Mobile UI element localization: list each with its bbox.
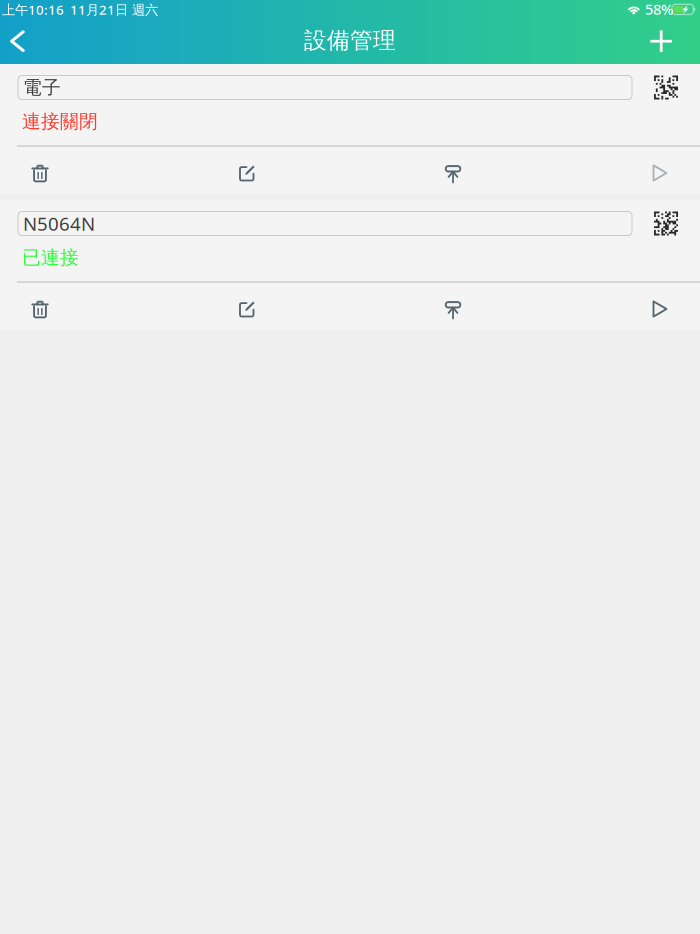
button[interactable]: 電子 bbox=[18, 75, 632, 99]
staticText: 設備管理 bbox=[304, 27, 396, 54]
staticText: 電子 bbox=[23, 76, 61, 99]
button[interactable]: Connect bbox=[631, 285, 689, 333]
staticText: N5064N bbox=[23, 211, 95, 236]
button[interactable]: N5064N bbox=[18, 211, 632, 235]
button[interactable]: Send to device bbox=[424, 285, 482, 333]
button[interactable]: Connect bbox=[631, 149, 689, 197]
staticText: 連接關閉 bbox=[22, 110, 98, 133]
staticText: 上午10:16 11月21日 週六 bbox=[2, 1, 158, 18]
staticText: 58% bbox=[645, 0, 673, 19]
button[interactable]: Back bbox=[0, 19, 39, 63]
button[interactable]: Delete device bbox=[11, 149, 69, 197]
button[interactable]: Send to device bbox=[424, 149, 482, 197]
button[interactable]: Add device bbox=[639, 19, 683, 63]
button[interactable]: Rename device bbox=[217, 149, 275, 197]
button[interactable]: Show QR code bbox=[654, 75, 678, 99]
staticText: 已連接 bbox=[22, 246, 79, 269]
button[interactable]: Delete device bbox=[11, 285, 69, 333]
button[interactable]: Show QR code bbox=[654, 211, 678, 235]
button[interactable]: Rename device bbox=[217, 285, 275, 333]
